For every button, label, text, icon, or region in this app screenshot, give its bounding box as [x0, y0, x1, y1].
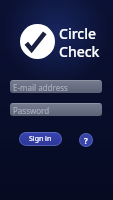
button[interactable]: Password [10, 103, 102, 116]
button[interactable]: E-mail address [10, 80, 102, 93]
staticText: Sign in [29, 134, 52, 144]
staticText: ? [84, 135, 88, 146]
staticText: E-mail address [13, 82, 68, 93]
button[interactable]: ? [79, 133, 93, 147]
staticText: Password [13, 105, 50, 116]
staticText: Circle Check [59, 24, 100, 61]
button[interactable]: Sign in [19, 132, 62, 146]
